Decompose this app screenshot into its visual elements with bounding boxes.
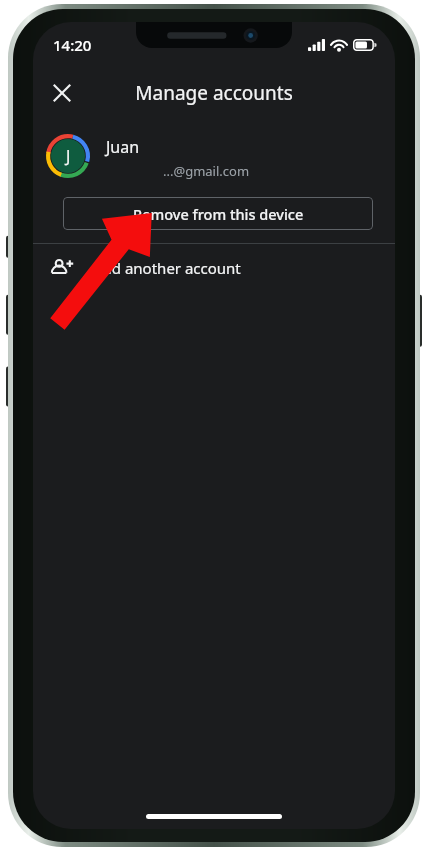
staticText: ...@gmail.com [163, 162, 250, 180]
staticText: Juan [106, 136, 140, 158]
button[interactable]: Add another account [33, 244, 395, 292]
button[interactable]: Remove from this device [63, 197, 373, 230]
button[interactable]: Close [41, 72, 83, 114]
staticText: Manage accounts [135, 80, 293, 106]
staticText: Add another account [93, 258, 241, 278]
staticText: J [66, 145, 71, 167]
staticText: Remove from this device [133, 204, 304, 224]
staticText: 14:20 [53, 35, 92, 55]
